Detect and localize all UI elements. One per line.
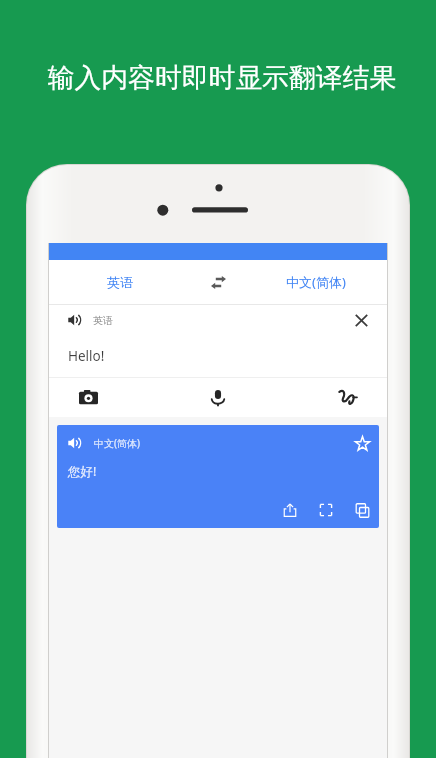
- staticText: 英语: [93, 314, 113, 327]
- button[interactable]: Swap languages: [191, 260, 245, 304]
- button[interactable]: 中文(简体): [57, 425, 379, 528]
- button[interactable]: Copy translation: [347, 498, 377, 522]
- staticText: 输入内容时即时显示翻译结果: [4, 61, 436, 95]
- button[interactable]: Handwriting input: [326, 378, 370, 417]
- staticText: 您好!: [68, 463, 97, 480]
- button[interactable]: Share: [275, 498, 305, 522]
- button[interactable]: Clear text: [346, 305, 376, 335]
- staticText: 中文(简体): [94, 436, 140, 450]
- button[interactable]: 中文(简体): [245, 260, 387, 304]
- button[interactable]: Voice input: [196, 378, 240, 417]
- button[interactable]: Save to phrasebook: [347, 428, 377, 458]
- staticText: 中文(简体): [286, 273, 346, 291]
- staticText: Hello!: [68, 347, 105, 365]
- button[interactable]: Camera input: [66, 378, 110, 417]
- button[interactable]: 英语: [49, 260, 191, 304]
- staticText: 英语: [107, 274, 133, 290]
- button[interactable]: Fullscreen: [311, 498, 341, 522]
